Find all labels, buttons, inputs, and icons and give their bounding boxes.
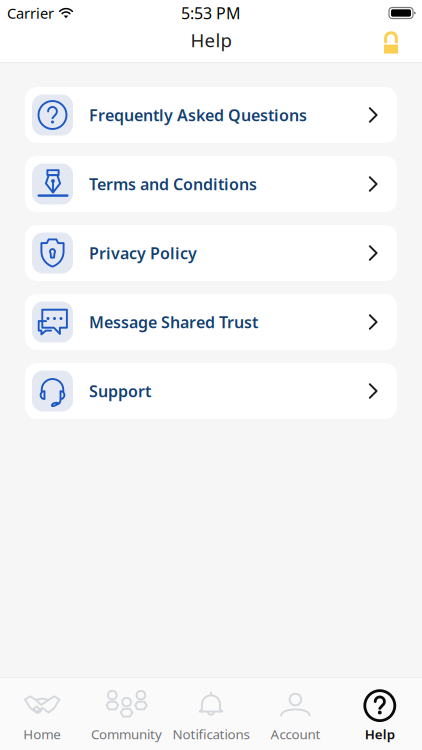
button[interactable]: Notifications	[169, 673, 253, 750]
staticText: Home	[23, 725, 61, 743]
staticText: Frequently Asked Questions	[89, 104, 307, 126]
staticText: Privacy Policy	[89, 242, 197, 264]
staticText: Message Shared Trust	[89, 311, 258, 333]
button[interactable]: Community	[84, 673, 169, 750]
button[interactable]: Help	[338, 673, 422, 750]
staticText: Help	[190, 28, 231, 52]
staticText: Help	[365, 725, 395, 743]
staticText: 5:53 PM	[181, 2, 241, 24]
staticText: Account	[270, 725, 320, 743]
staticText: Community	[91, 725, 162, 743]
staticText: Terms and Conditions	[89, 173, 257, 195]
button[interactable]: Message Shared Trust	[25, 294, 397, 350]
staticText: Carrier	[7, 3, 54, 23]
button[interactable]: Frequently Asked Questions	[25, 87, 397, 143]
button[interactable]: Support	[25, 363, 397, 419]
button[interactable]: Terms and Conditions	[25, 156, 397, 212]
button[interactable]: Privacy Policy	[25, 225, 397, 281]
button[interactable]: Home	[0, 673, 84, 750]
staticText: Support	[89, 380, 151, 402]
button[interactable]: Secure	[377, 28, 422, 58]
button[interactable]: Account	[253, 673, 338, 750]
staticText: Notifications	[172, 725, 249, 743]
